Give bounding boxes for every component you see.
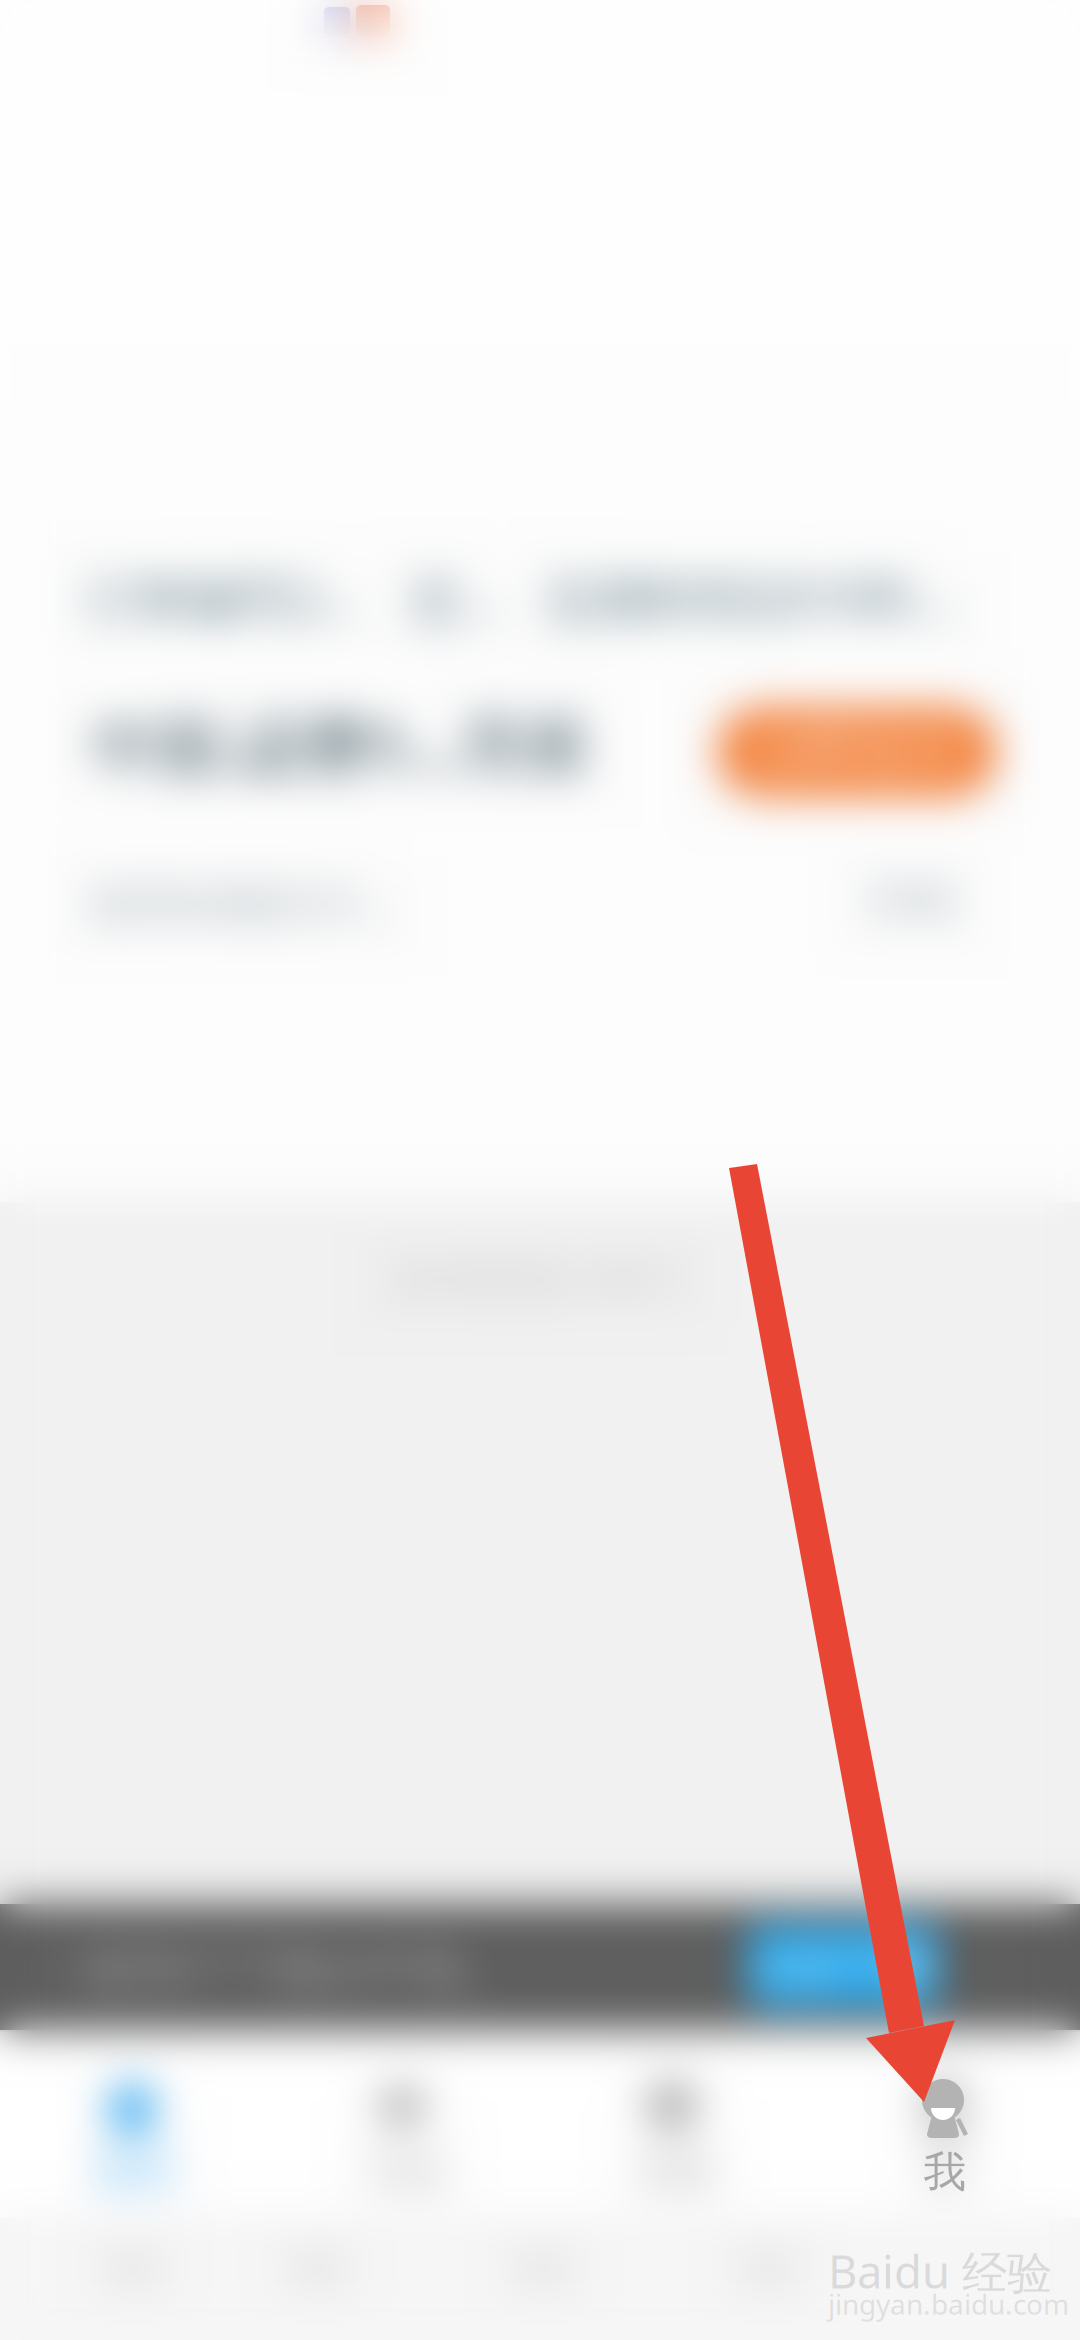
staticText: 广告 <box>42 1945 112 1995</box>
staticText: 话费100元 <box>242 702 472 788</box>
button[interactable]: 我 <box>810 2040 1080 2340</box>
button[interactable]: 充值 <box>270 2040 1080 2340</box>
staticText: 优惠 <box>635 2147 715 2196</box>
staticText: 首页 <box>95 2147 175 2196</box>
button[interactable]: 优惠 <box>540 2040 1080 2340</box>
staticText: Baidu 经验 <box>828 2241 1052 2301</box>
staticText: 详情 <box>866 874 956 930</box>
staticText: 订单编号201903 <box>86 564 386 632</box>
staticText: 使用余额支付成功 <box>88 872 418 932</box>
staticText: 点击下载 <box>753 1938 933 1994</box>
button[interactable]: 首页 <box>0 2040 1080 2340</box>
staticText: 我 <box>923 2146 966 2198</box>
button[interactable]: 我 <box>810 2040 1080 2340</box>
staticText: 充值 <box>460 706 588 784</box>
staticText: 交易 <box>410 564 510 632</box>
staticText: 交易时间2019年03月21日 <box>546 564 976 632</box>
button[interactable]: 立即支付 <box>718 707 996 797</box>
staticText: 中国移动 <box>92 702 302 788</box>
staticText: 立即支付 <box>755 721 959 783</box>
staticText: jingyan.baidu.com <box>828 2285 1069 2323</box>
button[interactable]: 点击下载 <box>748 1925 938 2007</box>
staticText: 我 <box>925 2147 965 2196</box>
staticText: 新用户下载APP领取福利 <box>86 1935 506 1999</box>
